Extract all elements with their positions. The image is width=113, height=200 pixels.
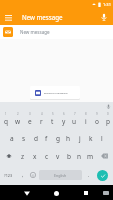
staticText: b	[67, 152, 71, 161]
button[interactable]: ?123	[0, 165, 17, 185]
button[interactable]: k	[85, 129, 96, 147]
button[interactable]: 6	[58, 111, 69, 129]
button[interactable]: x	[29, 147, 41, 165]
staticText: 5	[52, 112, 54, 116]
button[interactable]: v	[52, 147, 63, 165]
staticText: 3	[29, 112, 31, 116]
button[interactable]: 1	[0, 111, 12, 129]
staticText: z	[21, 152, 25, 161]
button[interactable]: d	[30, 129, 41, 147]
staticText: .	[88, 172, 90, 179]
staticText: l	[101, 134, 103, 143]
button[interactable]: s	[18, 129, 30, 147]
button[interactable]: 9	[91, 111, 102, 129]
staticText: a	[10, 134, 14, 143]
button[interactable]: a	[6, 129, 18, 147]
button[interactable]: g	[52, 129, 63, 147]
staticText: ?123	[4, 173, 13, 178]
staticText: s	[22, 134, 26, 143]
button[interactable]: m	[85, 147, 96, 165]
staticText: 1	[5, 112, 7, 116]
staticText: 4	[41, 112, 43, 116]
button[interactable]: Recent apps	[79, 186, 93, 200]
staticText: y	[62, 117, 66, 126]
staticText: 9	[96, 112, 98, 116]
button[interactable]: 4	[36, 111, 47, 129]
button[interactable]: 7	[69, 111, 80, 129]
staticText: New message	[20, 29, 50, 35]
staticText: c	[45, 152, 49, 161]
staticText: f	[45, 134, 48, 143]
button[interactable]: 8	[80, 111, 91, 129]
staticText: i	[85, 117, 87, 126]
button[interactable]: Change keyboard	[99, 186, 112, 199]
staticText: o	[95, 117, 99, 126]
staticText: 1:31	[103, 2, 111, 7]
staticText: v	[56, 152, 60, 161]
button[interactable]: Home	[49, 186, 63, 200]
staticText: t	[51, 117, 54, 126]
staticText: e	[28, 117, 32, 126]
button[interactable]: l	[96, 129, 107, 147]
button[interactable]: c	[41, 147, 52, 165]
button[interactable]: Voice input	[95, 8, 112, 25]
staticText: q	[4, 117, 8, 126]
button[interactable]: z	[17, 147, 29, 165]
button[interactable]: b	[63, 147, 74, 165]
staticText: 7	[74, 112, 76, 116]
button[interactable]: New message	[0, 25, 113, 39]
button[interactable]: Backspace	[96, 147, 113, 165]
staticText: 0	[107, 112, 109, 116]
button[interactable]: h	[63, 129, 74, 147]
staticText: n	[77, 152, 82, 161]
button[interactable]: Shift	[0, 147, 17, 165]
staticText: 2	[17, 112, 19, 116]
button[interactable]: Navigation menu	[0, 9, 16, 25]
staticText: u	[72, 117, 77, 126]
staticText: d	[34, 134, 38, 143]
staticText: h	[66, 134, 71, 143]
staticText: p	[106, 117, 110, 126]
button[interactable]: Back	[20, 186, 34, 200]
button[interactable]: Business Intelligence	[30, 86, 80, 99]
staticText: Business Intelligence	[44, 91, 68, 94]
button[interactable]: f	[41, 129, 52, 147]
button[interactable]: 2	[12, 111, 24, 129]
button[interactable]: j	[74, 129, 85, 147]
button[interactable]: Send	[97, 170, 108, 181]
staticText: g	[56, 134, 60, 143]
staticText: x	[33, 152, 37, 161]
button[interactable]: .	[84, 165, 93, 185]
staticText: New message	[22, 13, 63, 21]
staticText: j	[79, 134, 81, 143]
staticText: m	[87, 152, 94, 161]
staticText: 8	[85, 112, 87, 116]
button[interactable]: English	[39, 170, 82, 180]
staticText: English	[54, 173, 67, 178]
button[interactable]: 5	[47, 111, 58, 129]
button[interactable]: n	[74, 147, 85, 165]
staticText: w	[15, 117, 21, 126]
staticText: 6	[63, 112, 65, 116]
button[interactable]: 0	[102, 111, 113, 129]
button[interactable]: Voice typing	[104, 102, 113, 111]
button[interactable]: ,	[18, 165, 27, 185]
staticText: ,	[22, 172, 24, 179]
button[interactable]: 3	[24, 111, 36, 129]
button[interactable]: Emoji	[28, 165, 38, 185]
staticText: k	[89, 134, 93, 143]
staticText: r	[40, 117, 43, 126]
